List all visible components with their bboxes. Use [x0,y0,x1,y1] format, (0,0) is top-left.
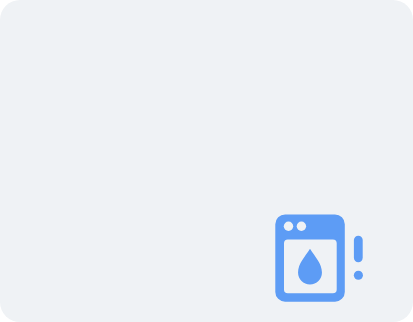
button[interactable]: Washing machine water leak alert [272,211,368,305]
